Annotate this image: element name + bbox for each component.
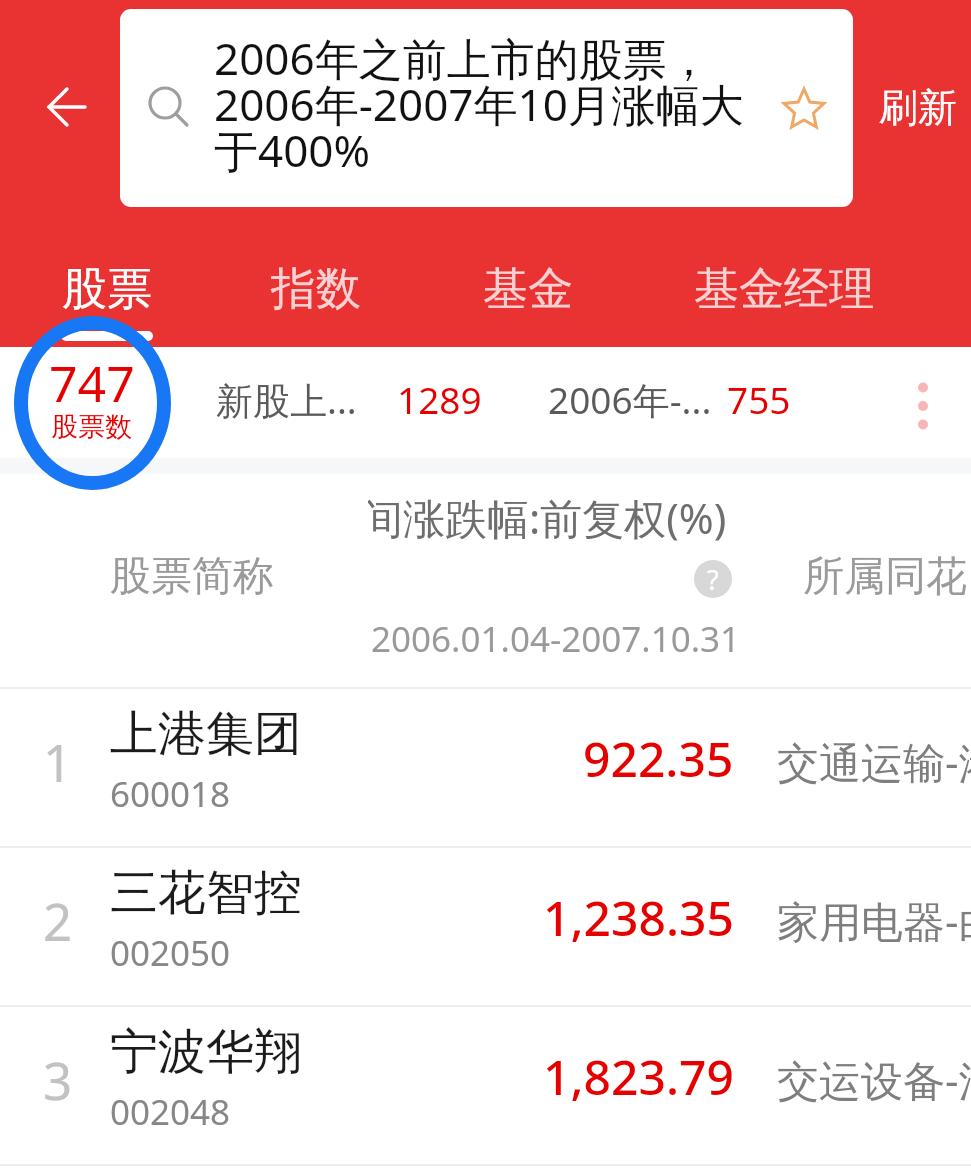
button[interactable]: More options (893, 373, 953, 433)
staticText: 股票数 (51, 410, 132, 444)
button[interactable]: 股票 (6, 261, 208, 341)
staticText: 1289 (397, 374, 482, 424)
staticText: 3 (43, 1045, 73, 1114)
staticText: 所属同花 (803, 551, 967, 603)
staticText: 002048 (110, 1088, 231, 1136)
staticText: 家用电器-白 (777, 892, 971, 949)
button[interactable]: 指数 (216, 261, 416, 341)
staticText: 区间涨跌幅:前复权(%) (368, 489, 727, 546)
staticText: 宁波华翔 (110, 1022, 302, 1082)
staticText: ? (707, 561, 719, 598)
button[interactable]: 2006年之前上市的股票，2006年-2007年10月涨幅大于400% (120, 9, 853, 207)
button[interactable]: 3 (0, 1007, 971, 1166)
staticText: 1,823.79 (543, 1044, 734, 1109)
staticText: 三花智控 (110, 863, 302, 923)
button[interactable]: Favorite (776, 82, 832, 138)
staticText: 股票简称 (110, 551, 274, 603)
staticText: 922.35 (583, 726, 734, 791)
staticText: 2006年-... (548, 374, 712, 425)
button[interactable]: 刷新 (869, 69, 967, 146)
staticText: 基金 (483, 261, 573, 318)
button[interactable]: 基金经理 (639, 261, 929, 341)
staticText: 股票 (62, 261, 152, 318)
staticText: 基金经理 (694, 261, 874, 318)
staticText: 2 (43, 886, 73, 955)
staticText: 指数 (271, 261, 361, 318)
button[interactable]: 新股上... (200, 347, 500, 458)
staticText: 2006.01.04-2007.10.31 (371, 615, 741, 663)
button[interactable]: Back (19, 71, 91, 143)
staticText: 2006年之前上市的股票，2006年-2007年10月涨幅大于400% (214, 28, 756, 180)
staticText: 002050 (110, 929, 231, 977)
staticText: 交运设备-汽 (777, 1051, 971, 1108)
button[interactable]: 基金 (428, 261, 628, 341)
staticText: 交通运输-港 (777, 733, 971, 790)
staticText: 上港集团 (110, 704, 302, 764)
staticText: 600018 (110, 770, 231, 818)
button[interactable]: Help (694, 560, 732, 598)
button[interactable]: 1 (0, 689, 971, 848)
button[interactable]: 747 (30, 347, 170, 458)
staticText: 新股上... (216, 374, 357, 425)
button[interactable]: 2006年-... (530, 347, 830, 458)
staticText: 1 (43, 727, 73, 796)
staticText: 1,238.35 (543, 885, 734, 950)
staticText: 747 (49, 349, 135, 417)
staticText: 755 (727, 374, 791, 424)
staticText: 刷新 (879, 83, 957, 132)
button[interactable]: 2 (0, 848, 971, 1007)
